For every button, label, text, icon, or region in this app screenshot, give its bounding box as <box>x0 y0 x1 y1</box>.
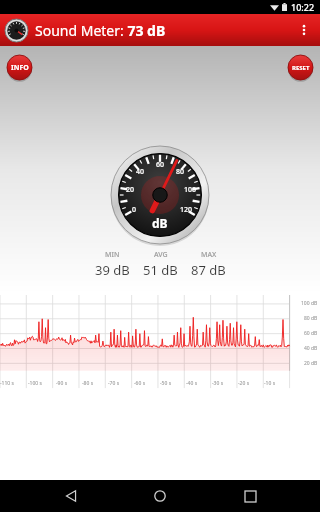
staticText: 40 <box>136 167 145 177</box>
staticText: INFO <box>11 63 29 73</box>
staticText: -20 s <box>238 380 250 387</box>
staticText: -50 s <box>160 380 172 387</box>
staticText: -60 s <box>134 380 146 387</box>
staticText: RESET <box>292 64 310 72</box>
staticText: 80 <box>176 167 185 177</box>
staticText: 40 dB <box>304 345 318 352</box>
staticText: -100 s <box>28 380 42 387</box>
staticText: AVG <box>154 250 168 260</box>
staticText: 80 dB <box>304 315 318 322</box>
staticText: MAX <box>201 250 217 260</box>
button[interactable]: RESET <box>286 53 315 82</box>
staticText: -30 s <box>212 380 224 387</box>
staticText: Sound Meter: 73 dB <box>35 21 166 40</box>
staticText: 60 dB <box>304 330 318 337</box>
staticText: 0 <box>132 205 137 215</box>
staticText: 60 <box>156 160 165 170</box>
staticText: 51 dB <box>143 261 178 279</box>
staticText: -10 s <box>264 380 276 387</box>
button[interactable]: Recents <box>231 480 269 512</box>
staticText: 10:22 <box>291 1 315 13</box>
staticText: 100 <box>184 185 197 195</box>
staticText: dB <box>152 215 168 231</box>
staticText: -90 s <box>56 380 68 387</box>
staticText: -80 s <box>82 380 94 387</box>
staticText: 39 dB <box>95 261 130 279</box>
button[interactable]: Home <box>141 480 179 512</box>
staticText: -70 s <box>108 380 120 387</box>
button[interactable]: Back <box>52 480 90 512</box>
staticText: MIN <box>105 250 120 260</box>
staticText: 120 <box>180 205 193 215</box>
staticText: -40 s <box>186 380 198 387</box>
staticText: 20 <box>126 185 135 195</box>
staticText: 20 dB <box>304 360 318 367</box>
button[interactable]: More options <box>288 14 320 46</box>
button[interactable]: Sound Meter: 73 dB <box>0 14 320 46</box>
staticText: -110 s <box>0 380 14 387</box>
staticText: 87 dB <box>191 261 226 279</box>
button[interactable]: INFO <box>5 53 34 82</box>
staticText: 100 dB <box>301 300 318 307</box>
